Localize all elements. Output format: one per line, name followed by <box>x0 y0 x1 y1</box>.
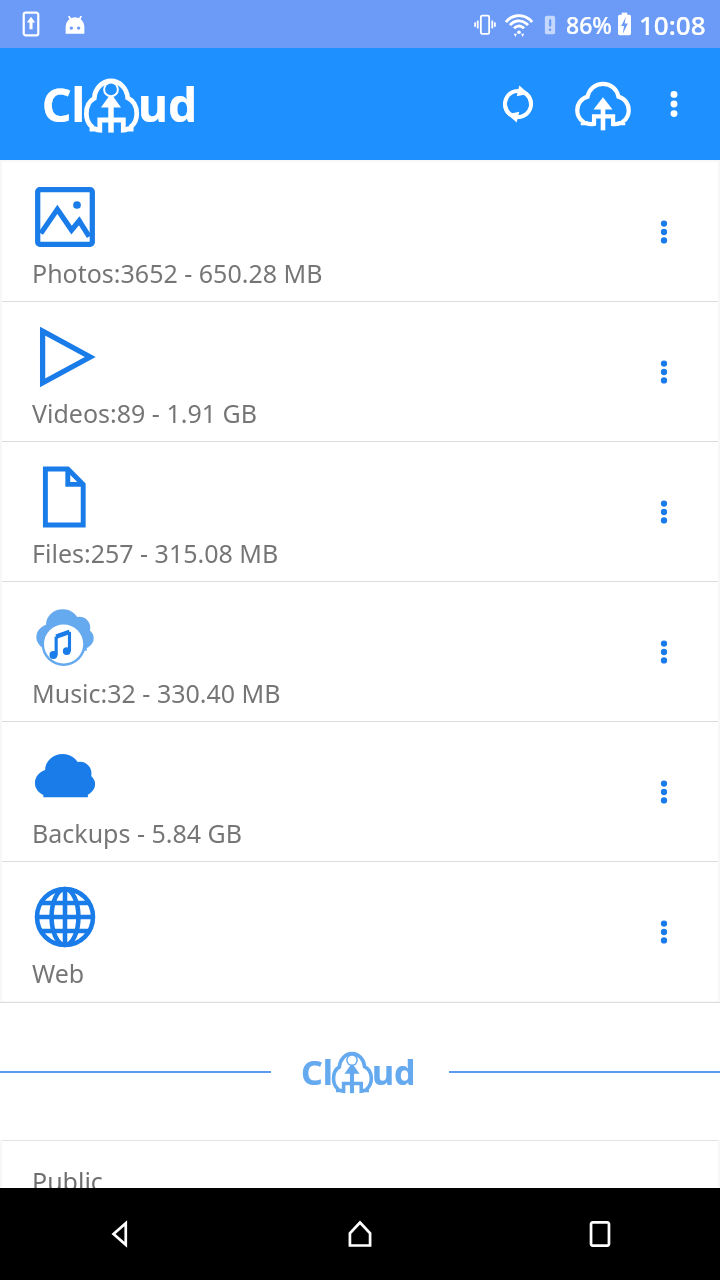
button[interactable]: Web <box>2 862 718 1001</box>
button[interactable]: Music:32 - 330.40 MB <box>2 582 718 721</box>
button[interactable]: Photos:3652 - 650.28 MB <box>2 162 718 301</box>
staticText: Public <box>32 1164 103 1198</box>
button[interactable]: Sync <box>488 74 548 134</box>
staticText: ud <box>372 1049 416 1095</box>
staticText: Videos:89 - 1.91 GB <box>32 396 257 430</box>
staticText: Backups - 5.84 GB <box>32 816 243 850</box>
button[interactable]: Backups - 5.84 GB <box>2 722 718 861</box>
staticText: 86% <box>566 9 612 40</box>
button[interactable]: More options <box>646 76 702 132</box>
button[interactable]: More options <box>640 768 688 816</box>
button[interactable]: Upload to cloud <box>570 71 636 137</box>
staticText: 10:08 <box>639 7 706 42</box>
button[interactable]: More options <box>640 348 688 396</box>
button[interactable]: Recents <box>480 1188 720 1280</box>
staticText: Web <box>32 956 85 990</box>
staticText: Music:32 - 330.40 MB <box>32 676 281 710</box>
button[interactable]: Files:257 - 315.08 MB <box>2 442 718 581</box>
staticText: Cl <box>42 73 86 136</box>
button[interactable]: Videos:89 - 1.91 GB <box>2 302 718 441</box>
button[interactable]: More options <box>640 628 688 676</box>
button[interactable]: More options <box>640 908 688 956</box>
staticText: Photos:3652 - 650.28 MB <box>32 256 323 290</box>
button[interactable]: Home <box>240 1188 480 1280</box>
button[interactable]: More options <box>640 208 688 256</box>
staticText: ud <box>138 73 197 136</box>
button[interactable]: Back <box>0 1188 240 1280</box>
button[interactable]: More options <box>640 488 688 536</box>
staticText: Cl <box>301 1049 333 1095</box>
staticText: Files:257 - 315.08 MB <box>32 536 279 570</box>
